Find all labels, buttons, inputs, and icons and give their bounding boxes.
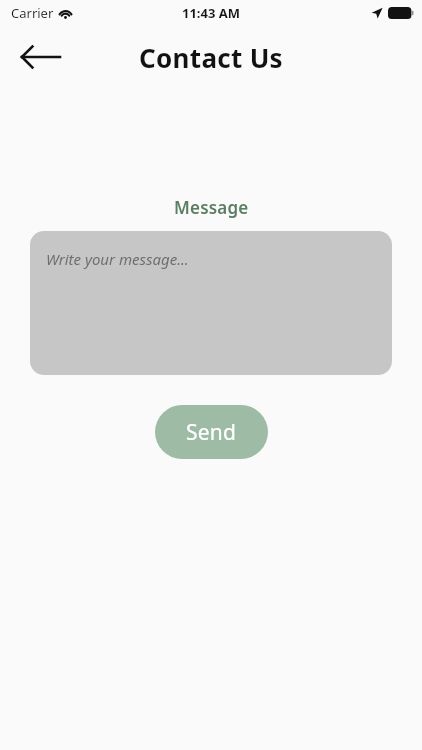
button[interactable]: Send [155, 405, 268, 459]
staticText: Contact Us [0, 40, 422, 75]
button[interactable]: Write your message... [30, 231, 392, 375]
staticText: Carrier [11, 4, 54, 22]
staticText: Message [174, 196, 249, 219]
staticText: 11:43 AM [182, 4, 241, 22]
staticText: Write your message... [46, 249, 189, 269]
button[interactable]: Back [12, 36, 70, 78]
staticText: Send [186, 418, 237, 447]
